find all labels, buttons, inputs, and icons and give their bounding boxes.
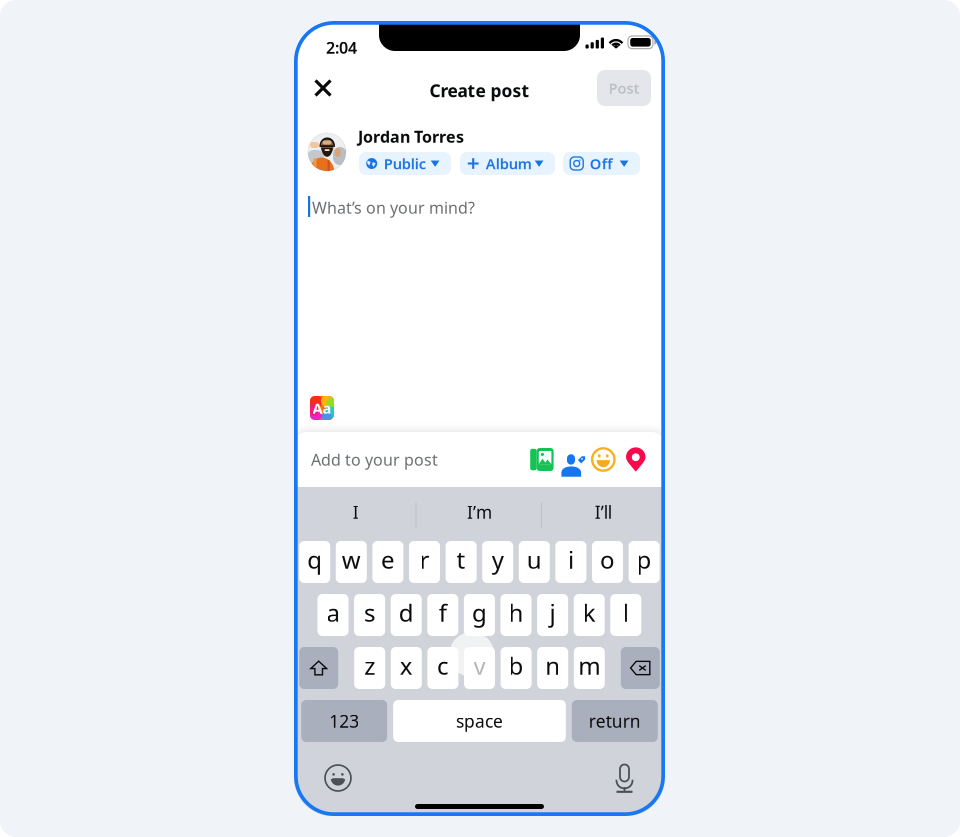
button[interactable]: a xyxy=(317,594,348,636)
staticText: g xyxy=(472,597,487,628)
staticText: r xyxy=(419,544,429,575)
button[interactable]: I’ll xyxy=(541,489,665,534)
button[interactable]: h xyxy=(500,594,531,636)
staticText: space xyxy=(456,709,503,732)
staticText: f xyxy=(439,597,447,628)
staticText: return xyxy=(589,709,641,732)
staticText: a xyxy=(326,597,339,628)
button[interactable]: f xyxy=(427,594,458,636)
staticText: n xyxy=(545,650,560,681)
button[interactable]: k xyxy=(574,594,605,636)
staticText: Add to your post xyxy=(311,449,438,470)
button[interactable]: o xyxy=(592,541,623,583)
staticText: l xyxy=(623,597,629,628)
staticText: w xyxy=(342,544,361,575)
staticText: o xyxy=(600,544,615,575)
staticText: Post xyxy=(608,78,639,98)
staticText: Jordan Torres xyxy=(358,126,464,147)
staticText: e xyxy=(381,544,395,575)
button[interactable]: Check in xyxy=(626,447,645,472)
staticText: q xyxy=(307,544,322,575)
button[interactable]: Dictation xyxy=(615,764,634,792)
button[interactable]: s xyxy=(354,594,385,636)
button[interactable]: Text style xyxy=(310,396,334,420)
staticText: I’ll xyxy=(595,500,612,523)
button[interactable]: space xyxy=(393,700,566,742)
button[interactable]: Emoji keyboard xyxy=(324,764,352,792)
staticText: Create post xyxy=(429,79,529,102)
staticText: Off xyxy=(590,154,613,173)
button[interactable]: l xyxy=(610,594,641,636)
staticText: t xyxy=(457,544,466,575)
staticText: Aa xyxy=(312,398,331,418)
staticText: c xyxy=(437,650,449,681)
staticText: u xyxy=(527,544,542,575)
button[interactable]: Close xyxy=(304,68,342,108)
button[interactable]: g xyxy=(464,594,495,636)
staticText: I xyxy=(353,500,359,523)
button[interactable]: i xyxy=(555,541,586,583)
button[interactable]: return xyxy=(572,700,658,742)
staticText: j xyxy=(550,597,556,628)
staticText: i xyxy=(568,544,574,575)
button[interactable]: Public xyxy=(359,152,451,175)
button[interactable]: Photo or video xyxy=(527,448,550,471)
staticText: 123 xyxy=(329,709,359,732)
button[interactable]: Delete xyxy=(621,647,660,689)
button[interactable]: d xyxy=(391,594,422,636)
button[interactable]: p xyxy=(629,541,660,583)
button[interactable]: q xyxy=(299,541,330,583)
button[interactable]: Feeling or activity xyxy=(592,448,614,471)
button[interactable]: r xyxy=(409,541,440,583)
button[interactable]: Tag people xyxy=(559,448,583,471)
staticText: v xyxy=(473,650,485,681)
staticText: d xyxy=(399,597,414,628)
staticText: k xyxy=(583,597,596,628)
staticText: x xyxy=(400,650,413,681)
button[interactable]: u xyxy=(519,541,550,583)
button[interactable]: Post xyxy=(597,70,651,106)
button[interactable]: e xyxy=(372,541,403,583)
button[interactable]: Off xyxy=(563,152,640,175)
button[interactable]: I’m xyxy=(418,489,541,534)
button[interactable]: t xyxy=(446,541,477,583)
button[interactable]: 123 xyxy=(301,700,387,742)
button[interactable]: b xyxy=(501,647,532,689)
button[interactable]: I xyxy=(294,489,418,534)
staticText: y xyxy=(492,544,504,575)
staticText: 2:04 xyxy=(326,37,357,58)
button[interactable]: m xyxy=(574,647,605,689)
button[interactable]: j xyxy=(537,594,568,636)
staticText: I’m xyxy=(467,500,492,523)
button[interactable]: v xyxy=(464,647,495,689)
staticText: Public xyxy=(384,154,426,173)
staticText: m xyxy=(578,650,600,681)
staticText: s xyxy=(364,597,375,628)
button[interactable]: Shift xyxy=(299,647,338,689)
button[interactable]: x xyxy=(391,647,422,689)
staticText: b xyxy=(509,650,524,681)
button[interactable]: c xyxy=(427,647,458,689)
staticText: What’s on your mind? xyxy=(312,197,475,218)
staticText: p xyxy=(637,544,652,575)
button[interactable]: z xyxy=(354,647,385,689)
staticText: h xyxy=(508,597,523,628)
staticText: Album xyxy=(486,154,532,173)
button[interactable]: n xyxy=(537,647,568,689)
staticText: z xyxy=(364,650,375,681)
button[interactable]: y xyxy=(482,541,513,583)
button[interactable]: w xyxy=(336,541,367,583)
button[interactable]: Album xyxy=(460,152,555,175)
